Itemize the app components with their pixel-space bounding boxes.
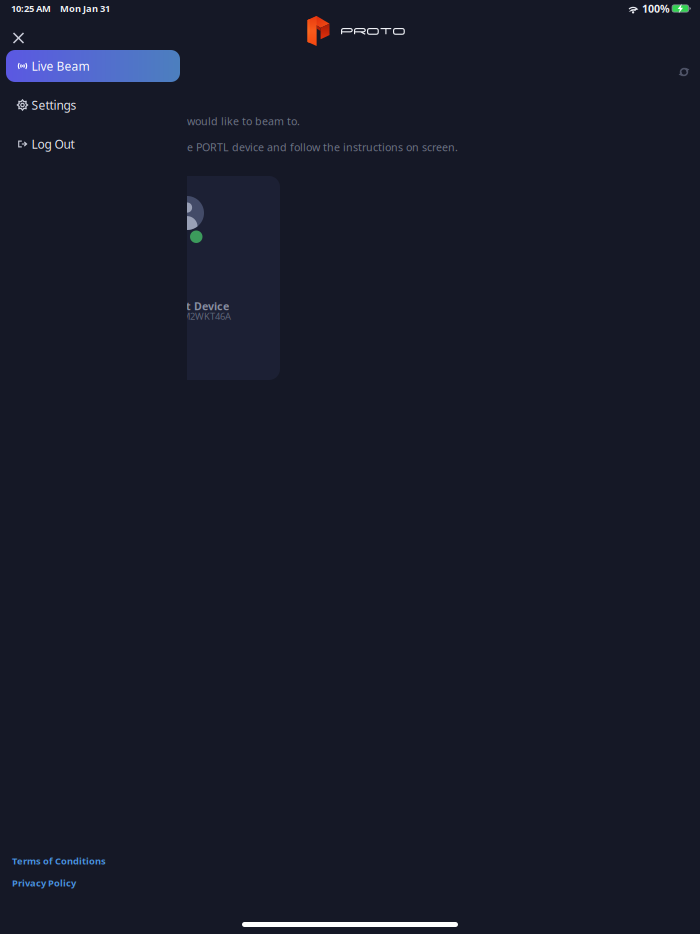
button[interactable]: Privacy Policy [0,872,187,894]
button[interactable]: Live Beam [6,50,180,82]
staticText: 1. Select the PORTL device you would lik… [30,114,300,128]
staticText: Settings [31,97,76,113]
button[interactable]: Settings [6,89,180,121]
button[interactable]: Refresh [669,57,699,87]
staticText: Test Device [170,299,229,313]
staticText: 10:25 AM [11,2,51,15]
staticText: 2. Once connected, tap on the PORTL devi… [40,140,458,154]
staticText: Terms of Conditions [12,855,106,867]
staticText: Privacy Policy [12,877,76,889]
staticText: M2WKT46A [182,310,231,322]
staticText: Live Beam [31,58,89,74]
button[interactable]: Terms of Conditions [0,850,187,872]
button[interactable]: Log Out [6,128,180,160]
button[interactable]: Test Device [156,176,280,380]
staticText: Log Out [31,136,74,152]
staticText: 100% [642,1,670,16]
button[interactable]: Close [3,24,33,52]
staticText: Mon Jan 31 [60,2,110,15]
